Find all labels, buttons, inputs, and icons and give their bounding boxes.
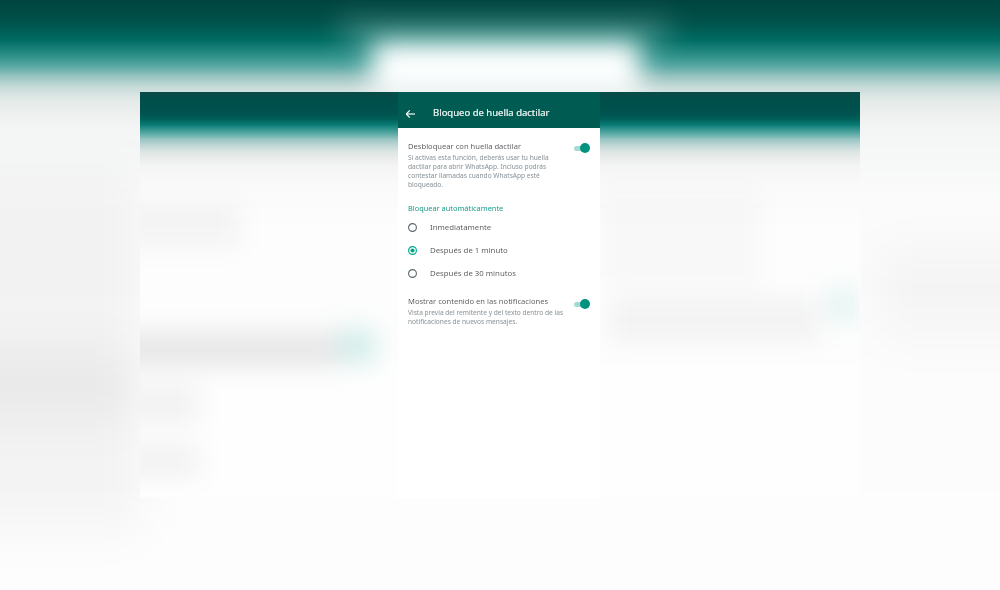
button[interactable]: Desbloquear con huella dactilar <box>398 128 600 192</box>
button[interactable]: Toggle <box>573 296 595 312</box>
staticText: Después de 30 minutos <box>430 268 516 279</box>
staticText: Después de 1 minuto <box>430 245 508 256</box>
staticText: Desbloquear con huella dactilar <box>408 141 522 151</box>
button[interactable]: Back <box>400 103 420 123</box>
staticText: Inmediatamente <box>430 222 492 233</box>
button[interactable]: Toggle <box>573 140 595 156</box>
staticText: Bloqueo de huella dactilar <box>433 106 550 119</box>
staticText: Bloquear automáticamente <box>408 203 504 213</box>
staticText: Si activas esta función, deberás usar tu… <box>408 153 549 189</box>
button[interactable]: Después de 30 minutos <box>398 263 600 286</box>
staticText: Vista previa del remitente y del texto d… <box>408 308 564 326</box>
staticText: Mostrar contenido en las notificaciones <box>408 296 549 306</box>
button[interactable]: Después de 1 minuto <box>398 240 600 263</box>
button[interactable]: Mostrar contenido en las notificaciones <box>398 291 600 351</box>
button[interactable]: Inmediatamente <box>398 217 600 240</box>
